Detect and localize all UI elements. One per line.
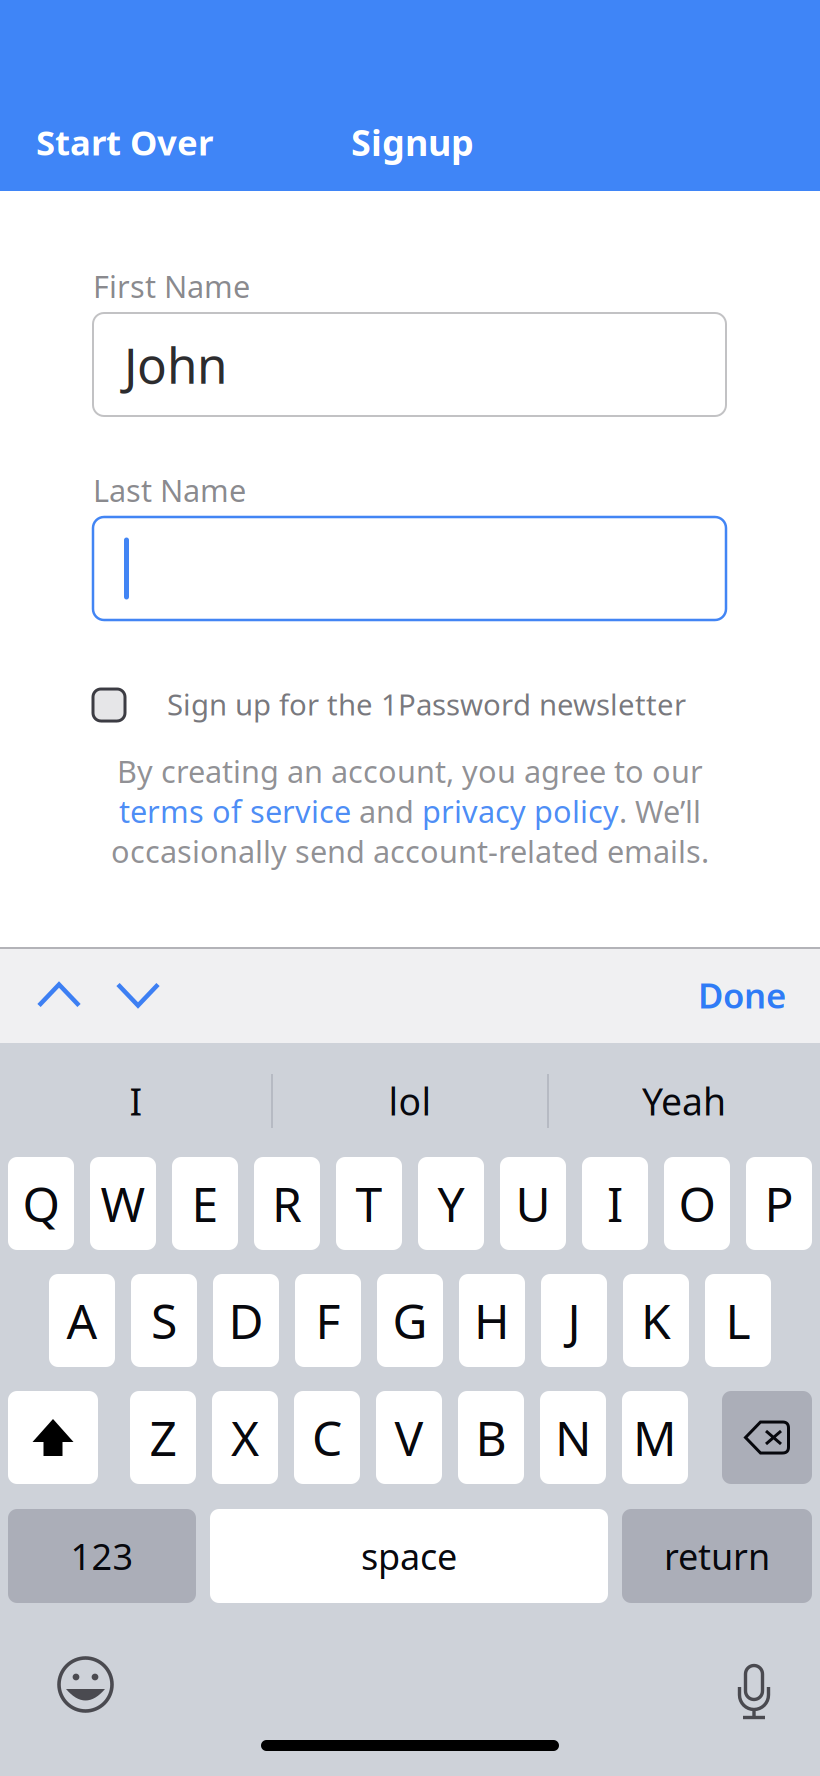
- staticText: C: [312, 1406, 342, 1469]
- staticText: X: [231, 1406, 259, 1469]
- button[interactable]: A: [49, 1274, 115, 1367]
- staticText: D: [228, 1289, 263, 1352]
- staticText: K: [641, 1289, 671, 1352]
- button[interactable]: privacy policy: [422, 791, 619, 831]
- staticText: S: [151, 1289, 177, 1352]
- button[interactable]: Delete: [722, 1391, 812, 1484]
- staticText: W: [100, 1172, 145, 1235]
- staticText: L: [725, 1289, 750, 1352]
- button[interactable]: Yeah: [549, 1066, 819, 1136]
- button[interactable]: return: [622, 1509, 812, 1603]
- button[interactable]: B: [458, 1391, 524, 1484]
- button[interactable]: X: [212, 1391, 278, 1484]
- button[interactable]: Previous field: [20, 948, 98, 1042]
- staticText: Q: [22, 1172, 59, 1235]
- staticText: . We’ll: [619, 791, 701, 831]
- button[interactable]: Shift: [8, 1391, 98, 1484]
- button[interactable]: U: [500, 1157, 566, 1250]
- button[interactable]: lol: [273, 1066, 547, 1136]
- staticText: 123: [70, 1532, 133, 1580]
- button[interactable]: I: [1, 1066, 271, 1136]
- button[interactable]: Sign up for the 1Password newsletter: [87, 683, 131, 727]
- button[interactable]: I: [582, 1157, 648, 1250]
- button[interactable]: John: [93, 313, 726, 416]
- staticText: I: [129, 1076, 142, 1126]
- staticText: N: [555, 1406, 591, 1469]
- button[interactable]: P: [746, 1157, 812, 1250]
- button[interactable]: V: [376, 1391, 442, 1484]
- staticText: I: [607, 1172, 623, 1235]
- staticText: return: [664, 1532, 770, 1580]
- staticText: J: [567, 1289, 580, 1352]
- staticText: Done: [698, 972, 786, 1018]
- staticText: By creating an account, you agree to our: [117, 751, 703, 791]
- button[interactable]: S: [131, 1274, 197, 1367]
- button[interactable]: Z: [130, 1391, 196, 1484]
- staticText: privacy policy: [422, 791, 619, 831]
- button[interactable]: 123: [8, 1509, 196, 1603]
- staticText: Yeah: [642, 1076, 726, 1126]
- staticText: John: [124, 332, 227, 397]
- button[interactable]: M: [622, 1391, 688, 1484]
- button[interactable]: Done: [646, 948, 786, 1042]
- staticText: Sign up for the 1Password newsletter: [167, 684, 686, 723]
- staticText: Y: [437, 1172, 464, 1235]
- button[interactable]: [93, 517, 726, 620]
- button[interactable]: G: [377, 1274, 443, 1367]
- button[interactable]: Signup: [351, 112, 511, 172]
- staticText: E: [191, 1172, 218, 1235]
- button[interactable]: space: [210, 1509, 608, 1603]
- staticText: M: [633, 1406, 677, 1469]
- staticText: Last Name: [93, 470, 246, 510]
- button[interactable]: R: [254, 1157, 320, 1250]
- staticText: T: [355, 1172, 382, 1235]
- staticText: F: [315, 1289, 340, 1352]
- button[interactable]: Start Over: [36, 112, 266, 172]
- button[interactable]: Dictation: [737, 1664, 771, 1720]
- staticText: First Name: [93, 266, 250, 306]
- button[interactable]: O: [664, 1157, 730, 1250]
- button[interactable]: Emoji: [57, 1656, 114, 1713]
- staticText: O: [678, 1172, 715, 1235]
- staticText: H: [474, 1289, 510, 1352]
- button[interactable]: E: [172, 1157, 238, 1250]
- button[interactable]: K: [623, 1274, 689, 1367]
- button[interactable]: J: [541, 1274, 607, 1367]
- staticText: Signup: [351, 118, 474, 166]
- button[interactable]: terms of service: [119, 791, 351, 831]
- staticText: Z: [149, 1406, 176, 1469]
- staticText: and: [351, 791, 422, 831]
- staticText: R: [272, 1172, 302, 1235]
- button[interactable]: Next field: [99, 948, 177, 1042]
- button[interactable]: W: [90, 1157, 156, 1250]
- staticText: A: [66, 1289, 97, 1352]
- staticText: occasionally send account-related emails…: [111, 831, 709, 871]
- staticText: Start Over: [36, 119, 213, 165]
- staticText: terms of service: [119, 791, 351, 831]
- staticText: U: [515, 1172, 550, 1235]
- staticText: P: [764, 1172, 793, 1235]
- staticText: B: [475, 1406, 506, 1469]
- button[interactable]: C: [294, 1391, 360, 1484]
- staticText: space: [361, 1532, 457, 1580]
- staticText: lol: [388, 1076, 431, 1126]
- button[interactable]: Q: [8, 1157, 74, 1250]
- button[interactable]: T: [336, 1157, 402, 1250]
- button[interactable]: N: [540, 1391, 606, 1484]
- staticText: G: [392, 1289, 427, 1352]
- button[interactable]: H: [459, 1274, 525, 1367]
- button[interactable]: F: [295, 1274, 361, 1367]
- button[interactable]: Y: [418, 1157, 484, 1250]
- staticText: V: [394, 1406, 423, 1469]
- button[interactable]: L: [705, 1274, 771, 1367]
- button[interactable]: D: [213, 1274, 279, 1367]
